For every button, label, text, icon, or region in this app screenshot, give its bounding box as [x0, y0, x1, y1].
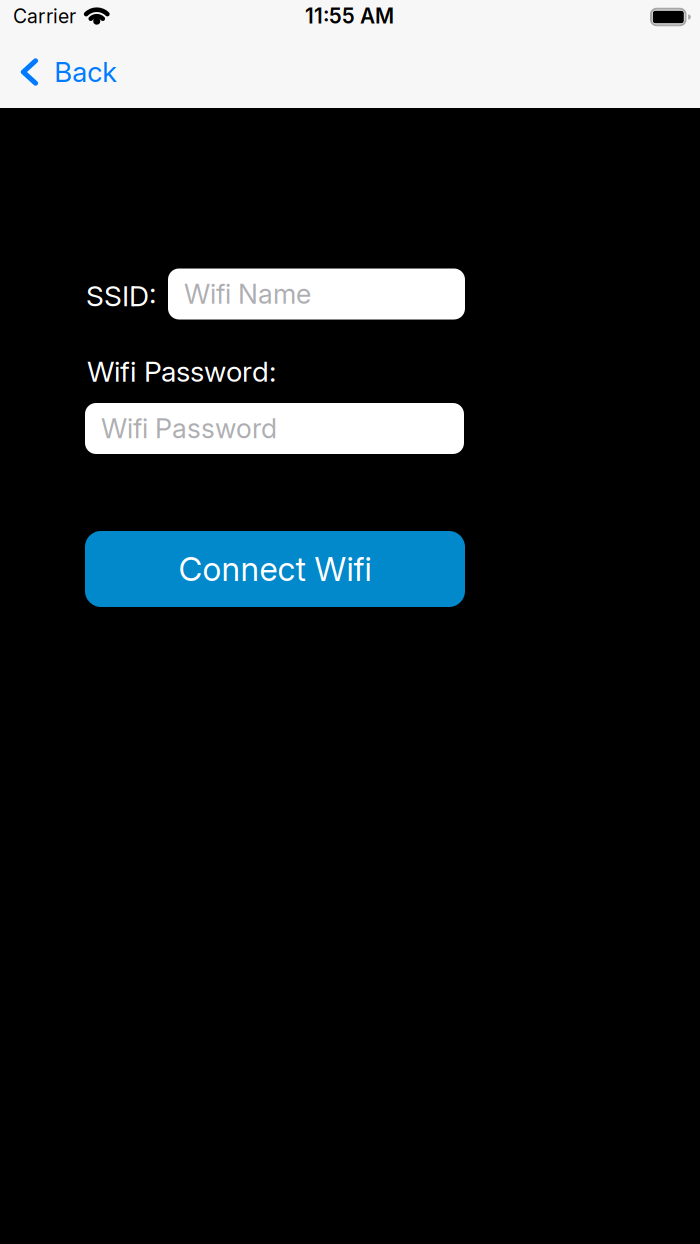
staticText: Wifi Password:: [87, 354, 276, 389]
staticText: Wifi Name: [184, 278, 311, 310]
staticText: Wifi Password: [85, 413, 236, 443]
staticText: Wifi Password: [101, 412, 277, 445]
textField[interactable]: Wifi Name: [168, 279, 465, 309]
staticText: Back: [54, 55, 117, 89]
textField[interactable]: Wifi Password: [85, 413, 464, 443]
staticText: SSID:: [86, 279, 156, 313]
button[interactable]: Connect Wifi: [85, 531, 465, 607]
staticText: Connect Wifi: [178, 549, 371, 589]
staticText: 11:55 AM: [305, 3, 394, 29]
button[interactable]: Back: [21, 55, 117, 89]
staticText: Wifi Name: [168, 279, 279, 309]
staticText: Carrier: [13, 5, 76, 28]
